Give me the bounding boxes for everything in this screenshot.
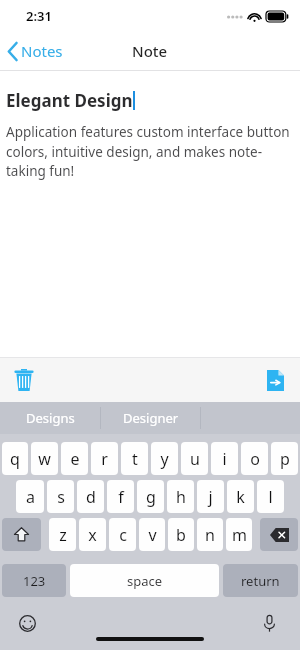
staticText: space [127, 572, 163, 590]
staticText: v [148, 524, 157, 546]
staticText: u [190, 448, 200, 470]
button[interactable]: u [181, 442, 208, 475]
button[interactable]: w [31, 442, 58, 475]
button[interactable]: v [139, 518, 165, 551]
button[interactable]: z [49, 518, 76, 551]
staticText: c [119, 524, 127, 546]
staticText: Notes [21, 41, 63, 61]
button[interactable]: Delete note [8, 363, 40, 397]
button[interactable]: Backspace [260, 518, 298, 551]
button[interactable]: Designer [101, 402, 200, 434]
button[interactable]: Shift [2, 518, 41, 551]
button[interactable]: d [77, 480, 104, 513]
button[interactable]: l [257, 480, 284, 513]
staticText: d [86, 486, 96, 508]
staticText: l [268, 486, 273, 508]
staticText: e [70, 448, 80, 470]
button[interactable]: h [167, 480, 194, 513]
button[interactable]: q [2, 442, 28, 475]
button[interactable]: y [151, 442, 178, 475]
button[interactable]: a [16, 480, 44, 513]
staticText: y [160, 448, 169, 470]
staticText: r [101, 448, 108, 470]
button[interactable]: Emoji [16, 612, 39, 635]
button[interactable]: s [47, 480, 74, 513]
button[interactable]: m [226, 518, 252, 551]
button[interactable]: r [91, 442, 118, 475]
button[interactable]: space [70, 564, 219, 597]
staticText: w [38, 448, 51, 470]
staticText: s [57, 486, 65, 508]
button[interactable]: k [227, 480, 254, 513]
staticText: h [176, 486, 186, 508]
button[interactable]: c [109, 518, 136, 551]
staticText: m [232, 524, 247, 546]
staticText: o [250, 448, 260, 470]
staticText: 123 [23, 572, 46, 590]
button[interactable]: i [211, 442, 238, 475]
button[interactable]: f [107, 480, 134, 513]
button[interactable]: g [137, 480, 164, 513]
button[interactable]: t [121, 442, 148, 475]
button[interactable]: o [241, 442, 268, 475]
staticText: return [241, 572, 280, 590]
button[interactable]: Notes [0, 35, 73, 67]
staticText: p [280, 448, 290, 470]
button[interactable]: n [197, 518, 223, 551]
staticText: Designs [26, 409, 75, 427]
staticText: a [26, 486, 35, 508]
button[interactable]: Designs [0, 402, 100, 434]
staticText: i [222, 448, 227, 470]
button[interactable]: return [223, 564, 298, 597]
button[interactable]: x [79, 518, 106, 551]
staticText: k [236, 486, 245, 508]
staticText: q [10, 448, 20, 470]
staticText: b [176, 524, 186, 546]
staticText: Designer [123, 409, 179, 427]
button[interactable]: p [271, 442, 298, 475]
staticText: x [88, 524, 97, 546]
staticText: t [132, 448, 138, 470]
staticText: z [59, 524, 67, 546]
button[interactable]: j [197, 480, 224, 513]
staticText: n [205, 524, 215, 546]
button[interactable]: Share note [261, 364, 290, 397]
staticText: 2:31 [26, 7, 52, 25]
button[interactable]: 123 [2, 564, 66, 597]
button[interactable]: Dictation [261, 612, 278, 635]
button[interactable]: e [61, 442, 88, 475]
button[interactable]: b [168, 518, 194, 551]
staticText: g [146, 486, 156, 508]
staticText: Note [132, 41, 168, 61]
staticText: j [208, 486, 213, 508]
staticText: Application features custom interface bu… [6, 123, 292, 180]
staticText: f [118, 486, 124, 508]
staticText: Elegant Design [6, 89, 133, 112]
